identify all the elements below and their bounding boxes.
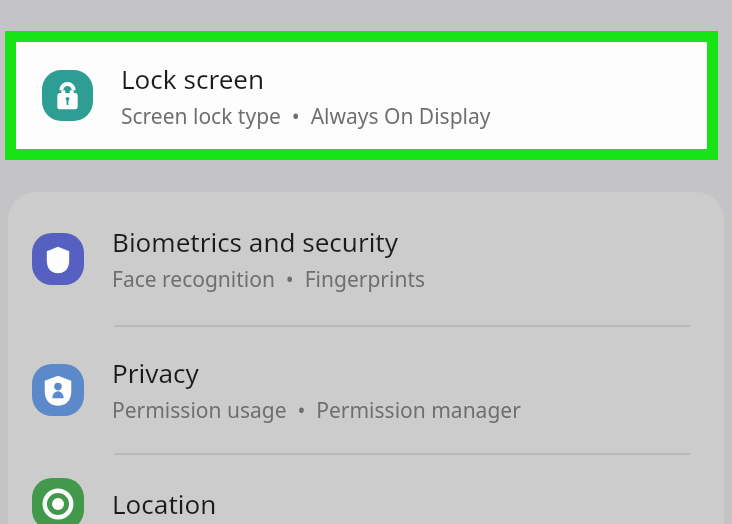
staticText: Biometrics and security: [112, 224, 399, 259]
staticText: Face recognition • Fingerprints: [112, 265, 426, 294]
other: Privacy: [32, 364, 84, 416]
staticText: Privacy: [112, 355, 199, 390]
other: Lock screen: [42, 70, 93, 121]
staticText: Screen lock type • Always On Display: [121, 102, 491, 131]
staticText: Location: [112, 486, 217, 521]
staticText: Permission usage • Permission manager: [112, 396, 521, 425]
staticText: Lock screen: [121, 61, 265, 96]
button[interactable]: Lock screen: [16, 42, 707, 149]
button[interactable]: Location: [8, 455, 724, 524]
other: Biometrics and security: [32, 233, 84, 285]
button[interactable]: Privacy: [8, 327, 724, 453]
button[interactable]: Biometrics and security: [8, 192, 724, 325]
button[interactable]: Lock screen: [16, 42, 707, 149]
other: Location: [32, 478, 84, 524]
